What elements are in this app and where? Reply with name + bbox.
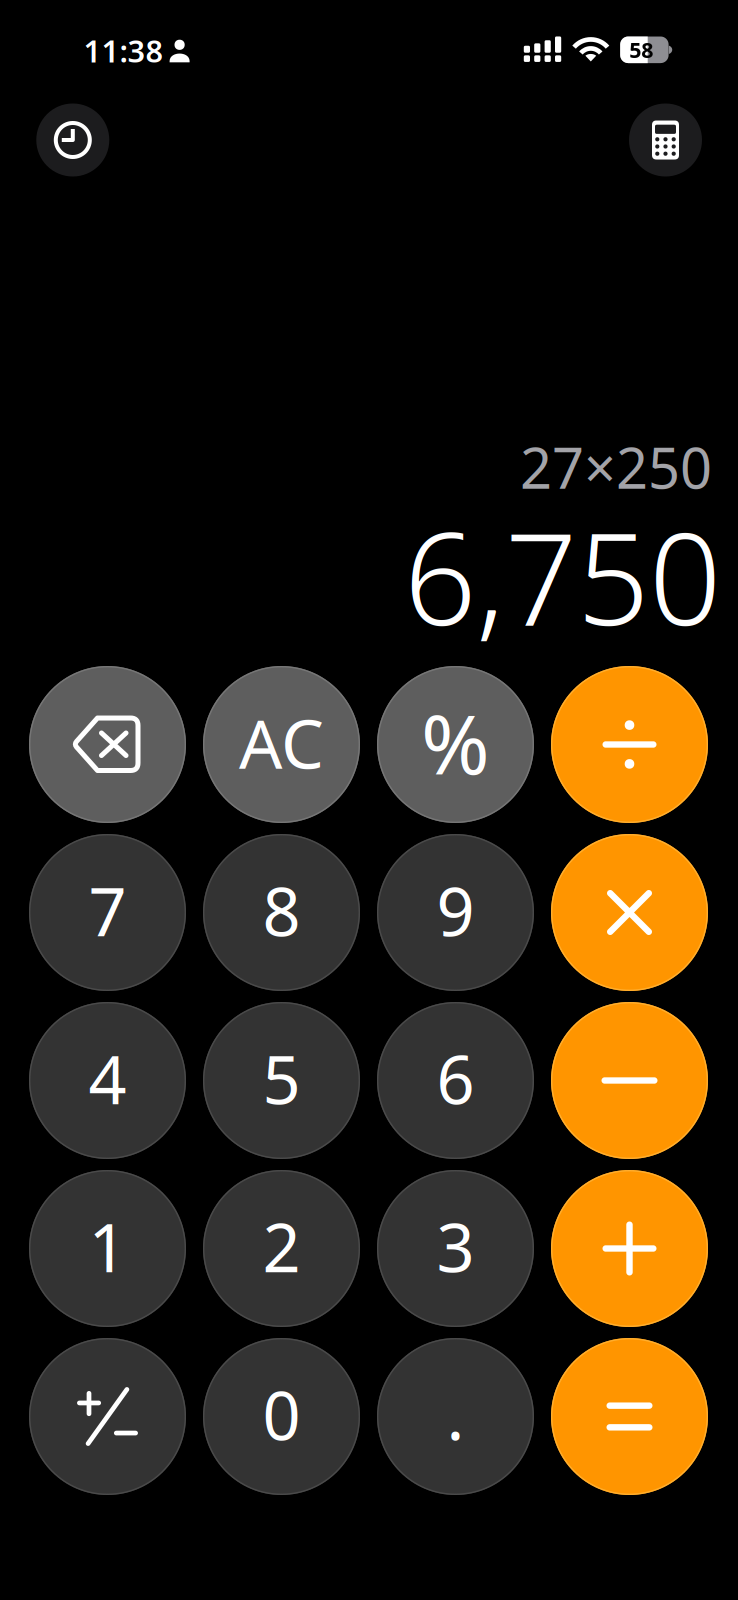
staticText: 27×250	[520, 430, 712, 504]
staticText: 1	[88, 1202, 126, 1290]
button[interactable]: Decimal point	[377, 1338, 534, 1495]
staticText: %	[421, 687, 490, 797]
button[interactable]: 7	[29, 834, 186, 991]
button[interactable]: Plus or minus	[29, 1338, 186, 1495]
staticText: 5	[262, 1034, 300, 1122]
button[interactable]: 8	[203, 834, 360, 991]
button[interactable]: History	[36, 103, 109, 176]
button[interactable]: 2	[203, 1170, 360, 1327]
button[interactable]: Calculator	[629, 103, 702, 176]
button[interactable]: 5	[203, 1002, 360, 1159]
staticText: 58	[629, 36, 653, 64]
button[interactable]: Multiply	[551, 834, 708, 991]
staticText: 8	[262, 866, 300, 954]
button[interactable]: 0	[203, 1338, 360, 1495]
button[interactable]: Delete	[29, 666, 186, 823]
staticText: .	[446, 1370, 464, 1458]
staticText: 6	[436, 1034, 474, 1122]
button[interactable]: 4	[29, 1002, 186, 1159]
staticText: 7	[88, 866, 126, 954]
staticText: 4	[88, 1034, 126, 1122]
staticText: 9	[436, 866, 474, 954]
staticText: 2	[262, 1202, 300, 1290]
button[interactable]: 3	[377, 1170, 534, 1327]
button[interactable]: Add	[551, 1170, 708, 1327]
button[interactable]: 9	[377, 834, 534, 991]
button[interactable]: 6	[377, 1002, 534, 1159]
staticText: 6,750	[404, 492, 721, 660]
staticText: AC	[239, 697, 324, 787]
staticText: 11:38	[83, 30, 163, 71]
button[interactable]: 1	[29, 1170, 186, 1327]
button[interactable]: Equals	[551, 1338, 708, 1495]
button[interactable]: All clear	[203, 666, 360, 823]
staticText: 0	[262, 1370, 300, 1458]
button[interactable]: Divide	[551, 666, 708, 823]
button[interactable]: Subtract	[551, 1002, 708, 1159]
staticText: 3	[436, 1202, 474, 1290]
button[interactable]: Percent	[377, 666, 534, 823]
